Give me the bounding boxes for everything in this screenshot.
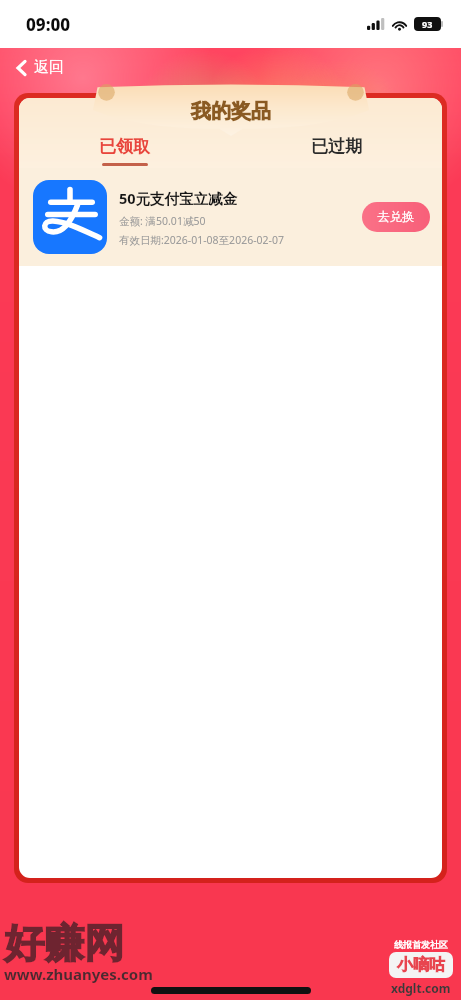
other: Alipay xyxy=(33,180,107,254)
button[interactable]: 去兑换 xyxy=(362,202,430,232)
button[interactable]: 已领取 xyxy=(19,134,230,168)
staticText: 有效日期:2026-01-08至2026-02-07 xyxy=(119,233,284,247)
staticText: 我的奖品 xyxy=(191,99,271,124)
staticText: www.zhuanyes.com xyxy=(4,964,153,984)
staticText: 09:00 xyxy=(26,13,71,36)
staticText: 去兑换 xyxy=(377,209,415,225)
button[interactable]: 返回 xyxy=(10,54,70,81)
staticText: 金额: 满50.01减50 xyxy=(119,214,206,228)
staticText: 返回 xyxy=(34,58,64,77)
staticText: 已领取 xyxy=(99,136,150,157)
staticText: 小嘀咕 xyxy=(397,955,445,975)
button[interactable]: 已过期 xyxy=(230,134,442,168)
staticText: 93 xyxy=(422,18,433,30)
staticText: xdglt.com xyxy=(391,980,451,996)
staticText: 50元支付宝立减金 xyxy=(119,188,238,208)
staticText: 线报首发社区 xyxy=(394,939,448,950)
button[interactable]: Alipay xyxy=(19,168,442,266)
staticText: 已过期 xyxy=(311,136,362,157)
staticText: 好赚网 xyxy=(4,918,124,968)
